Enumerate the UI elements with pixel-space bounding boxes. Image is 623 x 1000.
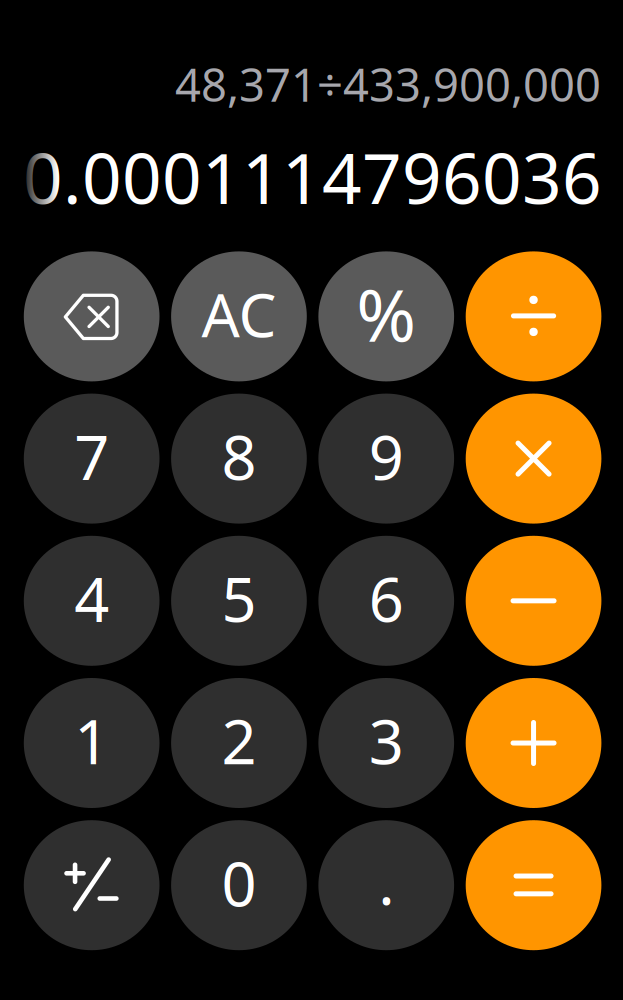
- staticText: 0.0001114796036: [23, 131, 602, 223]
- staticText: AC: [201, 274, 276, 354]
- staticText: 5: [221, 558, 256, 639]
- button[interactable]: 7: [24, 394, 159, 524]
- button[interactable]: Toggle sign: [24, 820, 159, 950]
- button[interactable]: 6: [318, 536, 454, 666]
- button[interactable]: Subtract: [466, 536, 601, 666]
- button[interactable]: 1: [24, 678, 159, 808]
- button[interactable]: 4: [24, 536, 159, 666]
- button[interactable]: %: [318, 251, 454, 381]
- button[interactable]: 9: [318, 394, 454, 524]
- button[interactable]: 5: [171, 536, 307, 666]
- button[interactable]: 0: [171, 820, 307, 950]
- staticText: 1: [74, 700, 109, 781]
- button[interactable]: .: [318, 820, 454, 950]
- button[interactable]: Equals: [466, 820, 601, 950]
- button[interactable]: Add: [466, 678, 601, 808]
- staticText: 6: [369, 558, 404, 639]
- button[interactable]: AC: [171, 251, 307, 381]
- staticText: %: [356, 266, 416, 362]
- staticText: 8: [221, 415, 256, 497]
- staticText: .: [378, 840, 394, 922]
- staticText: 9: [369, 415, 404, 497]
- staticText: 4: [74, 558, 109, 639]
- button[interactable]: 8: [171, 394, 307, 524]
- button[interactable]: 3: [318, 678, 454, 808]
- staticText: 0: [221, 842, 256, 923]
- button[interactable]: Divide: [466, 251, 601, 381]
- button[interactable]: Delete: [24, 251, 159, 381]
- staticText: 3: [369, 700, 404, 781]
- button[interactable]: Multiply: [466, 394, 601, 524]
- staticText: 7: [74, 415, 109, 497]
- staticText: 48,371÷433,900,000: [175, 54, 601, 114]
- staticText: 2: [221, 700, 256, 781]
- button[interactable]: 2: [171, 678, 307, 808]
